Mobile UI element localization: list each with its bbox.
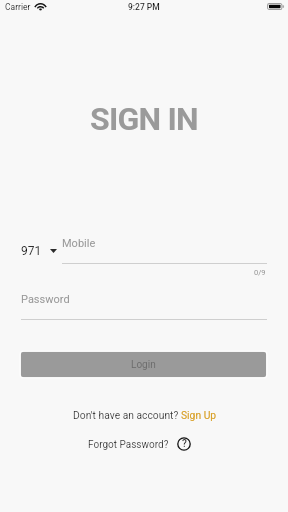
staticText: ? bbox=[182, 438, 187, 450]
staticText: Forgot Password? bbox=[88, 439, 169, 451]
button[interactable]: Password bbox=[21, 290, 267, 321]
staticText: 9:27 PM bbox=[128, 2, 160, 12]
button[interactable]: Mobile bbox=[62, 234, 267, 264]
staticText: Don't have an account? bbox=[73, 409, 181, 421]
staticText: SIGN IN bbox=[90, 100, 198, 138]
button[interactable]: 971 bbox=[16, 238, 62, 262]
button[interactable]: Sign Up bbox=[181, 409, 217, 421]
staticText: Login bbox=[131, 359, 156, 371]
button[interactable]: Forgot Password? bbox=[88, 439, 169, 451]
staticText: 971 bbox=[21, 244, 42, 258]
staticText: Mobile bbox=[62, 237, 96, 250]
staticText: 0/9 bbox=[254, 268, 266, 277]
staticText: Carrier bbox=[5, 2, 31, 12]
button[interactable]: Help bbox=[177, 437, 191, 451]
button[interactable]: Login bbox=[21, 352, 266, 377]
staticText: Password bbox=[21, 293, 70, 306]
staticText: Sign Up bbox=[181, 409, 217, 421]
